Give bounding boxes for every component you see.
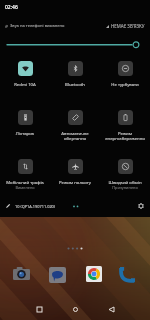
button[interactable]: Bluetooth xyxy=(50,61,100,87)
button[interactable]: Режим енергозбереження xyxy=(100,110,150,142)
staticText: Мобільний трафік xyxy=(2,179,48,185)
staticText: Вимкнено xyxy=(0,185,50,190)
button[interactable]: Phone xyxy=(119,266,136,283)
staticText: Режим енергозбереження xyxy=(102,130,148,142)
button[interactable]: Messages xyxy=(49,267,66,283)
button[interactable]: Ліхтарик xyxy=(0,110,50,136)
button[interactable]: Автоматичне обертання xyxy=(50,110,100,142)
staticText: Не турбувати xyxy=(102,81,148,87)
button[interactable]: Chrome xyxy=(86,266,102,282)
button[interactable]: Recents xyxy=(26,298,52,320)
button[interactable]: Режим польоту xyxy=(50,159,100,185)
button[interactable]: Edit xyxy=(5,203,11,209)
staticText: Redmi 10A xyxy=(2,81,48,87)
button[interactable]: Redmi 10A xyxy=(0,61,50,87)
staticText: Режим польоту xyxy=(52,179,98,185)
staticText: 02:46 xyxy=(5,4,18,11)
button[interactable]: Швидкий обмін xyxy=(100,159,150,190)
button[interactable]: Camera xyxy=(13,267,30,280)
staticText: Ліхтарик xyxy=(2,130,48,136)
button[interactable]: Back xyxy=(98,298,124,320)
button[interactable]: Settings xyxy=(137,202,145,210)
staticText: Призупинено xyxy=(100,185,150,190)
button[interactable]: Home xyxy=(62,298,88,320)
staticText: 10 (QP1A.190711.020) xyxy=(15,204,56,209)
staticText: НЕМАЄ ЗВ'ЯЗКУ xyxy=(111,23,145,29)
staticText: Bluetooth xyxy=(52,81,98,87)
staticText: Швидкий обмін xyxy=(102,179,148,185)
staticText: Звук на телефоні вимкнено xyxy=(10,23,65,29)
button[interactable]: Мобільний трафік xyxy=(0,159,50,190)
button[interactable]: Не турбувати xyxy=(100,61,150,87)
staticText: Автоматичне обертання xyxy=(52,130,98,142)
